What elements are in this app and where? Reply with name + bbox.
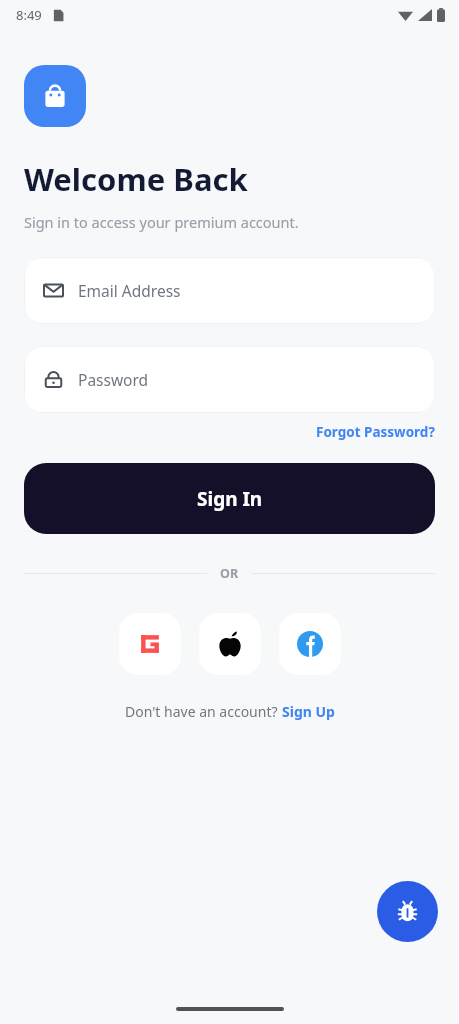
button[interactable]: Sign Up xyxy=(282,702,335,721)
staticText: Sign Up xyxy=(282,702,335,721)
staticText: Email Address xyxy=(78,280,181,301)
button[interactable]: Sign In xyxy=(24,463,435,534)
button[interactable]: Password xyxy=(24,346,435,413)
button[interactable]: Sign in with Apple xyxy=(199,613,261,675)
staticText: Welcome Back xyxy=(24,158,248,200)
staticText: Password xyxy=(78,369,149,390)
button[interactable]: Sign in with Facebook xyxy=(279,613,341,675)
staticText: Forgot Password? xyxy=(316,423,435,441)
staticText: Sign in to access your premium account. xyxy=(24,212,299,232)
staticText: Don't have an account? xyxy=(125,702,282,721)
button[interactable]: Forgot Password? xyxy=(316,423,435,441)
button[interactable] xyxy=(24,65,86,127)
staticText: Sign In xyxy=(197,486,263,512)
staticText: OR xyxy=(220,565,239,582)
staticText: 8:49 xyxy=(16,6,42,24)
button[interactable]: Sign in with Google xyxy=(119,613,181,675)
button[interactable]: Email Address xyxy=(24,257,435,324)
button[interactable]: Debug xyxy=(377,881,438,942)
